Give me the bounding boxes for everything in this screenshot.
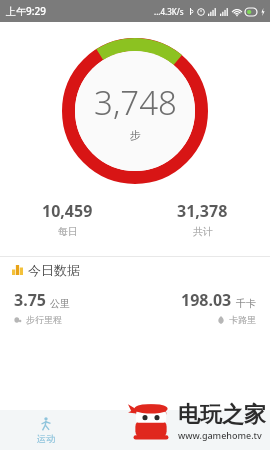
staticText: www.gamehome.tv xyxy=(178,429,262,441)
button[interactable]: 3.75 xyxy=(0,287,135,327)
staticText: 步 xyxy=(130,128,141,142)
staticText: 电玩之家 xyxy=(178,401,266,429)
staticText: 步行里程 xyxy=(26,314,62,325)
button[interactable]: 10,459 xyxy=(0,198,135,240)
staticText: 千卡 xyxy=(236,297,256,310)
staticText: 每日 xyxy=(58,225,78,238)
button[interactable]: 198.03 xyxy=(135,287,270,327)
staticText: 31,378 xyxy=(177,200,228,222)
staticText: 运动 xyxy=(37,433,55,444)
staticText: 198.03 xyxy=(181,289,232,311)
staticText: 共计 xyxy=(193,225,213,238)
button[interactable]: 31,378 xyxy=(135,198,270,240)
staticText: 3.75 xyxy=(14,289,46,311)
button[interactable]: 运动 xyxy=(20,410,72,450)
staticText: 3,748 xyxy=(94,80,177,125)
staticText: 上午9:29 xyxy=(6,4,46,18)
staticText: ...4.3K/s xyxy=(154,6,184,17)
staticText: 今日数据 xyxy=(28,262,80,278)
staticText: 公里 xyxy=(50,297,70,310)
staticText: 10,459 xyxy=(42,200,93,222)
other: 运动 xyxy=(39,417,53,431)
staticText: 卡路里 xyxy=(229,314,256,325)
